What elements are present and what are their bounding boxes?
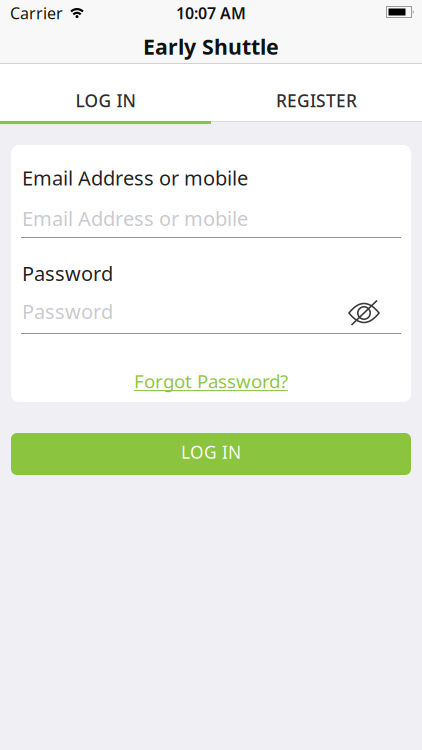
- staticText: Early Shuttle: [143, 32, 279, 61]
- staticText: Password: [22, 298, 113, 325]
- button[interactable]: [348, 300, 380, 326]
- button[interactable]: LOG IN: [0, 64, 211, 121]
- staticText: LOG IN: [181, 440, 241, 463]
- button[interactable]: REGISTER: [211, 64, 422, 121]
- staticText: REGISTER: [276, 89, 357, 112]
- staticText: Forgot Password?: [134, 368, 288, 393]
- button[interactable]: LOG IN: [11, 433, 411, 475]
- staticText: Carrier: [10, 2, 63, 24]
- staticText: Email Address or mobile: [22, 164, 248, 191]
- staticText: LOG IN: [75, 89, 135, 112]
- button[interactable]: Forgot Password?: [134, 368, 288, 393]
- staticText: Password: [22, 260, 113, 287]
- staticText: 10:07 AM: [176, 2, 246, 24]
- staticText: Email Address or mobile: [22, 205, 248, 232]
